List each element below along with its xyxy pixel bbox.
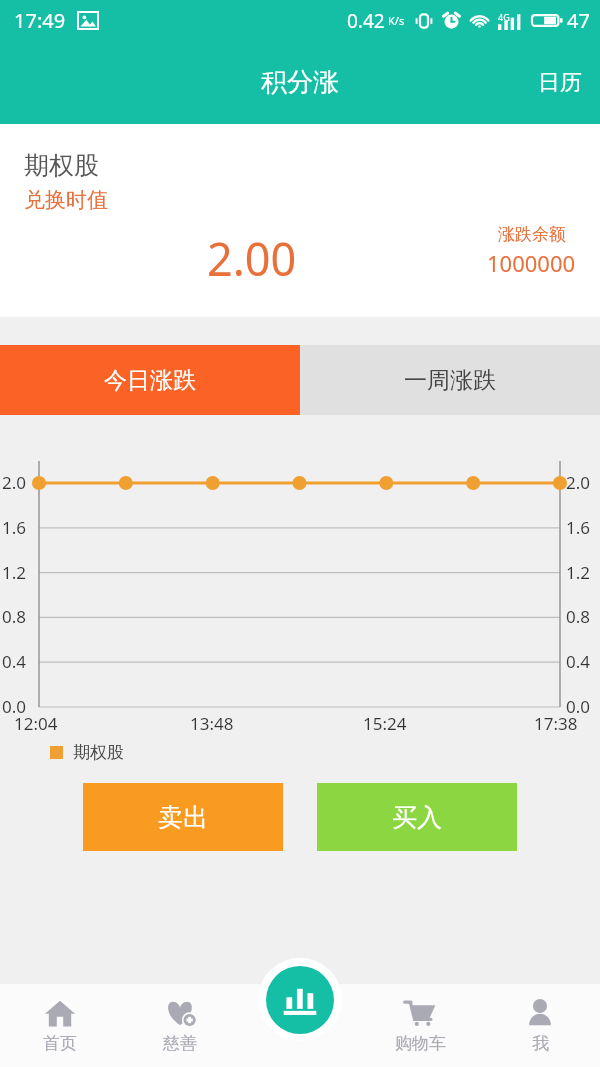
button[interactable]: 行情 bbox=[258, 958, 342, 1041]
staticText: 1.6 bbox=[566, 516, 591, 539]
staticText: 期权股 bbox=[73, 742, 124, 763]
staticText: 我 bbox=[532, 1033, 549, 1054]
staticText: 4G bbox=[498, 11, 510, 23]
button[interactable]: 一周涨跌 bbox=[300, 345, 600, 415]
button[interactable]: 慈善 bbox=[120, 984, 240, 1067]
staticText: 日历 bbox=[538, 69, 582, 97]
button[interactable]: 买入 bbox=[317, 783, 517, 851]
staticText: 涨跌余额 bbox=[498, 224, 566, 245]
staticText: K/s bbox=[388, 13, 405, 28]
staticText: 0.0 bbox=[2, 695, 27, 718]
staticText: 2.0 bbox=[2, 471, 27, 494]
button[interactable]: 我 bbox=[480, 984, 600, 1067]
staticText: 1.2 bbox=[2, 561, 27, 584]
button[interactable]: 购物车 bbox=[360, 984, 480, 1067]
staticText: 2.0 bbox=[566, 471, 591, 494]
staticText: 17:49 bbox=[14, 7, 66, 34]
button[interactable]: 日历 bbox=[520, 53, 600, 113]
staticText: 卖出 bbox=[158, 802, 208, 833]
button[interactable]: 首页 bbox=[0, 984, 120, 1067]
staticText: 购物车 bbox=[395, 1033, 446, 1054]
staticText: 12:04 bbox=[14, 712, 58, 735]
staticText: 13:48 bbox=[190, 712, 234, 735]
staticText: 0.4 bbox=[2, 650, 27, 673]
staticText: 积分涨 bbox=[261, 66, 339, 99]
staticText: 期权股 bbox=[24, 150, 99, 181]
staticText: 2.00 bbox=[207, 228, 297, 289]
button[interactable]: 今日涨跌 bbox=[0, 345, 300, 415]
staticText: 0.0 bbox=[566, 695, 591, 718]
staticText: 15:24 bbox=[363, 712, 407, 735]
staticText: 首页 bbox=[43, 1033, 77, 1054]
staticText: 17:38 bbox=[534, 712, 578, 735]
staticText: 0.8 bbox=[566, 605, 591, 628]
staticText: 买入 bbox=[392, 802, 442, 833]
staticText: 0.8 bbox=[2, 605, 27, 628]
staticText: 0.42 bbox=[347, 8, 385, 34]
staticText: 0.4 bbox=[566, 650, 591, 673]
staticText: 47 bbox=[567, 7, 590, 34]
staticText: 兑换时值 bbox=[24, 187, 108, 213]
staticText: 1.6 bbox=[2, 516, 27, 539]
staticText: 慈善 bbox=[163, 1033, 197, 1054]
staticText: 1000000 bbox=[487, 248, 576, 278]
staticText: 一周涨跌 bbox=[404, 366, 496, 395]
button[interactable]: 卖出 bbox=[83, 783, 283, 851]
staticText: 1.2 bbox=[566, 561, 591, 584]
staticText: 今日涨跌 bbox=[104, 366, 196, 395]
